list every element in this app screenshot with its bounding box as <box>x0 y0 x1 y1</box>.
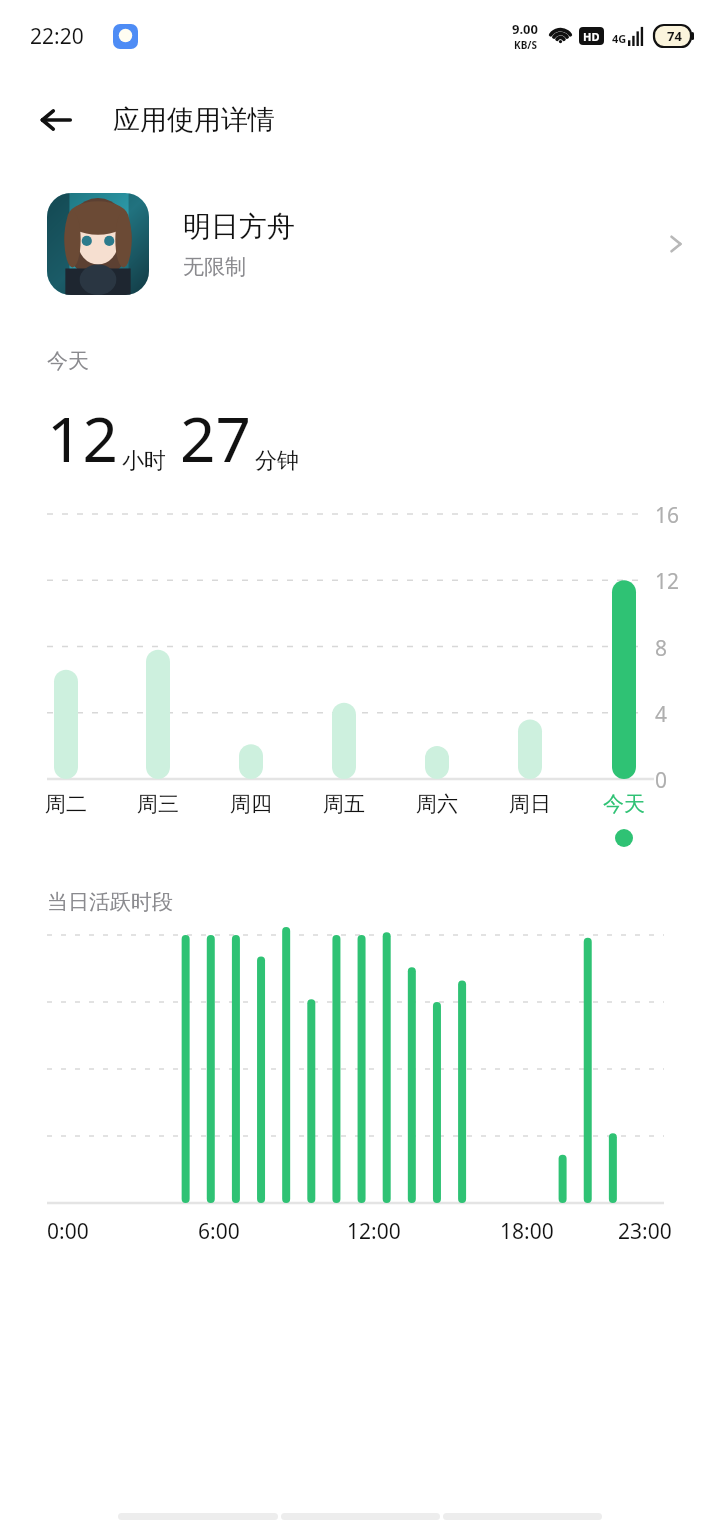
staticText: 周四 <box>224 791 278 817</box>
staticText: 当日活跃时段 <box>47 889 173 915</box>
staticText: 27 <box>180 396 251 480</box>
staticText: 明日方舟 <box>183 209 295 244</box>
staticText: 22:20 <box>30 22 84 51</box>
staticText: 16 <box>655 501 680 530</box>
staticText: 小时 <box>122 447 166 475</box>
button[interactable]: 明日方舟 <box>0 168 720 320</box>
staticText: 今天 <box>597 791 651 817</box>
staticText: 今天 <box>47 348 89 374</box>
staticText: 74 <box>667 27 682 45</box>
staticText: 周日 <box>503 791 557 817</box>
staticText: 6:00 <box>198 1217 240 1246</box>
staticText: HD <box>583 29 600 44</box>
staticText: 周五 <box>317 791 371 817</box>
staticText: 4G <box>612 31 627 46</box>
staticText: 无限制 <box>183 254 246 280</box>
staticText: KB/S <box>514 38 537 52</box>
staticText: 周二 <box>39 791 93 817</box>
staticText: 4 <box>655 700 668 729</box>
staticText: 18:00 <box>500 1217 554 1246</box>
staticText: 8 <box>655 634 668 663</box>
staticText: 12 <box>655 567 680 596</box>
staticText: 23:00 <box>618 1217 672 1246</box>
staticText: 周六 <box>410 791 464 817</box>
staticText: 0 <box>655 766 668 795</box>
button[interactable]: 返回 <box>26 90 86 150</box>
staticText: 0:00 <box>47 1217 89 1246</box>
staticText: 12:00 <box>347 1217 401 1246</box>
staticText: 分钟 <box>255 447 299 475</box>
staticText: 9.00 <box>512 20 538 38</box>
staticText: 周三 <box>131 791 185 817</box>
staticText: 12 <box>47 396 118 480</box>
staticText: 应用使用详情 <box>113 103 275 137</box>
